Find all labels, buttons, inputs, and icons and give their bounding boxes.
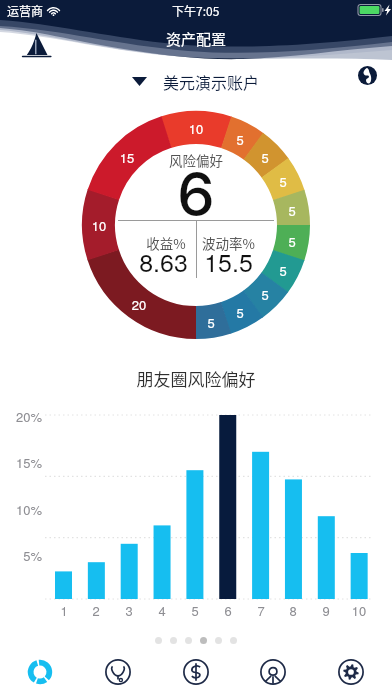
- staticText: 10: [85, 216, 113, 235]
- staticText: 风险偏好: [0, 150, 392, 170]
- staticText: 3: [115, 601, 143, 620]
- staticText: 5: [278, 201, 306, 220]
- button[interactable]: Portfolio: [14, 648, 66, 696]
- staticText: 5: [251, 148, 279, 167]
- button[interactable]: Language: [358, 66, 377, 85]
- staticText: 10: [182, 119, 210, 138]
- staticText: 资产配置: [166, 28, 227, 50]
- staticText: 20%: [0, 407, 42, 426]
- staticText: 收益%: [128, 233, 204, 253]
- staticText: 下午7:05: [172, 2, 220, 19]
- staticText: 波动率%: [189, 233, 268, 253]
- button[interactable]: Money: [170, 648, 222, 696]
- staticText: 8: [279, 601, 307, 620]
- staticText: 5: [226, 303, 254, 322]
- staticText: 20: [125, 295, 153, 314]
- staticText: 5: [269, 261, 297, 280]
- staticText: 10%: [0, 500, 42, 519]
- staticText: 4: [148, 601, 176, 620]
- staticText: 6: [0, 158, 392, 231]
- staticText: 8.63: [124, 243, 203, 279]
- staticText: 5%: [0, 546, 42, 565]
- staticText: 5: [197, 313, 225, 332]
- button[interactable]: Diagnose: [92, 648, 144, 696]
- staticText: 7: [247, 601, 275, 620]
- staticText: 2: [82, 601, 110, 620]
- staticText: 15.5: [189, 243, 268, 279]
- button[interactable]: 美元演示账户: [132, 70, 260, 93]
- staticText: 朋友圈风险偏好: [0, 366, 392, 391]
- staticText: 5: [251, 285, 279, 304]
- staticText: 5: [269, 172, 297, 191]
- staticText: 5: [181, 601, 209, 620]
- button[interactable]: Profile: [247, 648, 299, 696]
- staticText: 1: [50, 601, 78, 620]
- staticText: 5: [226, 130, 254, 149]
- staticText: 6: [214, 601, 242, 620]
- staticText: 9: [312, 601, 340, 620]
- staticText: 10: [345, 601, 373, 620]
- staticText: 15: [113, 148, 141, 167]
- button[interactable]: Settings: [325, 648, 377, 696]
- staticText: 15%: [0, 453, 42, 472]
- staticText: 美元演示账户: [163, 70, 260, 93]
- staticText: 5: [278, 232, 306, 251]
- staticText: 运营商: [7, 2, 44, 19]
